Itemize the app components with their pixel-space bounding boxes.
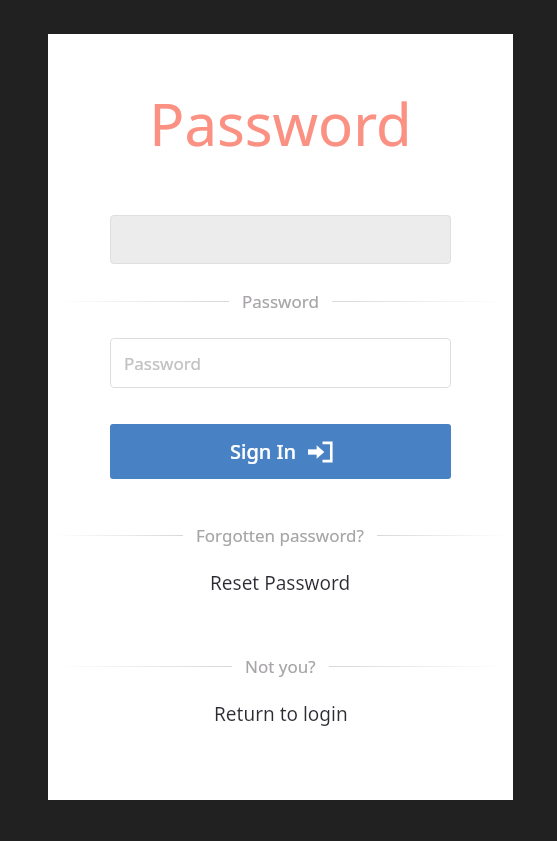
staticText: Password (242, 290, 319, 313)
staticText: Forgotten password? (196, 524, 364, 547)
button[interactable]: Reset Password (48, 567, 513, 599)
staticText: Reset Password (210, 570, 351, 596)
button[interactable]: Sign In (110, 424, 451, 479)
other: Sign In (308, 440, 332, 464)
staticText: Password (149, 84, 412, 163)
staticText: Not you? (245, 655, 316, 678)
button[interactable]: Password (110, 338, 451, 388)
staticText: Sign In (230, 438, 297, 465)
staticText: Password (124, 352, 201, 375)
button[interactable]: Return to login (48, 698, 513, 730)
staticText: Return to login (214, 701, 348, 727)
